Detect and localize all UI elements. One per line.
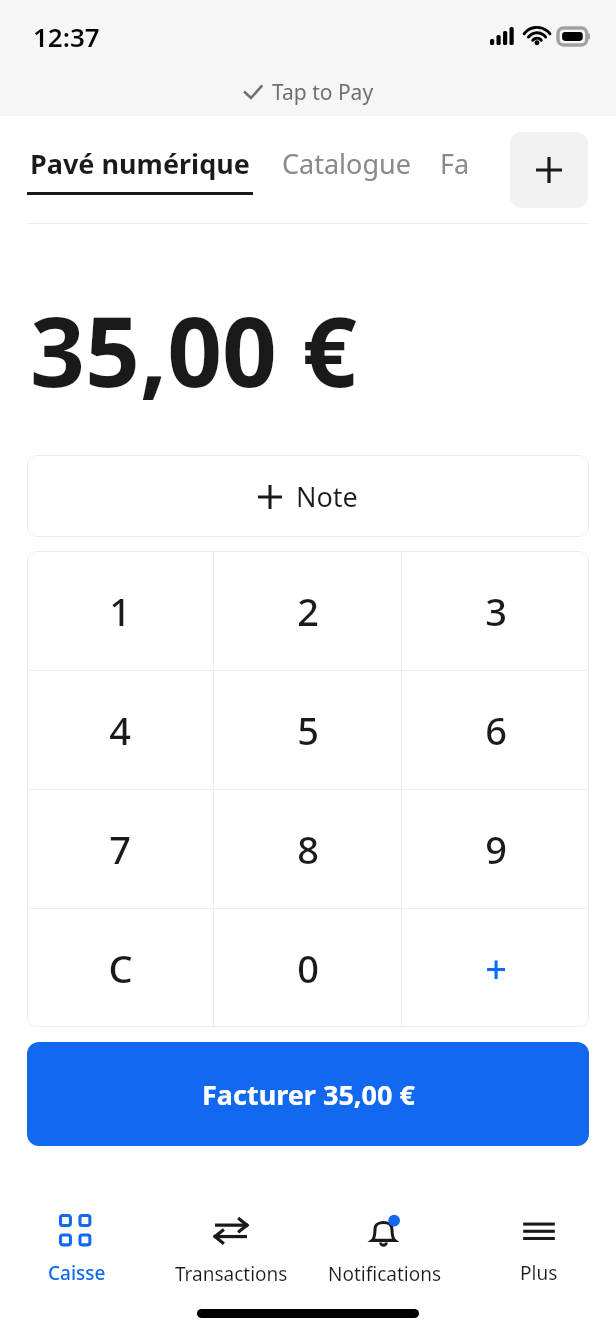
- button[interactable]: Facturer 35,00 €: [27, 1042, 589, 1146]
- staticText: Catalogue: [282, 145, 411, 182]
- staticText: +: [485, 942, 507, 994]
- button[interactable]: 9: [402, 790, 589, 908]
- staticText: 7: [109, 823, 131, 875]
- button[interactable]: Notifications: [308, 1200, 462, 1300]
- staticText: 6: [485, 704, 507, 756]
- button[interactable]: Add: [510, 132, 588, 208]
- button[interactable]: 4: [27, 671, 213, 789]
- button[interactable]: Fa: [440, 145, 470, 195]
- button[interactable]: +: [402, 909, 589, 1027]
- button[interactable]: 8: [214, 790, 401, 908]
- staticText: 1: [109, 585, 131, 637]
- button[interactable]: 3: [402, 551, 589, 670]
- staticText: 0: [297, 942, 319, 994]
- staticText: Pavé numérique: [30, 145, 250, 182]
- button[interactable]: Catalogue: [282, 145, 411, 195]
- button[interactable]: 0: [214, 909, 401, 1027]
- button[interactable]: 2: [214, 551, 401, 670]
- staticText: 8: [297, 823, 319, 875]
- staticText: 35,00 €: [30, 284, 357, 415]
- staticText: Facturer 35,00 €: [202, 1076, 415, 1113]
- staticText: 9: [485, 823, 507, 875]
- staticText: 3: [485, 585, 507, 637]
- staticText: 12:37: [33, 19, 100, 54]
- staticText: C: [108, 942, 133, 994]
- staticText: Caisse: [48, 1260, 106, 1286]
- button[interactable]: Plus: [462, 1200, 616, 1300]
- button[interactable]: 5: [214, 671, 401, 789]
- button[interactable]: Caisse: [0, 1200, 154, 1300]
- staticText: Notifications: [328, 1261, 442, 1287]
- button[interactable]: 7: [27, 790, 213, 908]
- staticText: 5: [297, 704, 319, 756]
- staticText: 2: [297, 585, 319, 637]
- button[interactable]: Transactions: [154, 1200, 308, 1300]
- staticText: Plus: [520, 1260, 558, 1286]
- button[interactable]: Note: [27, 455, 589, 537]
- staticText: Transactions: [175, 1261, 288, 1287]
- button[interactable]: Pavé numérique: [30, 145, 250, 192]
- button[interactable]: 1: [27, 551, 213, 670]
- staticText: 4: [109, 704, 131, 756]
- button[interactable]: C: [27, 909, 213, 1027]
- staticText: Note: [296, 478, 358, 515]
- button[interactable]: 6: [402, 671, 589, 789]
- staticText: Tap to Pay: [272, 78, 374, 107]
- staticText: Fa: [440, 145, 470, 182]
